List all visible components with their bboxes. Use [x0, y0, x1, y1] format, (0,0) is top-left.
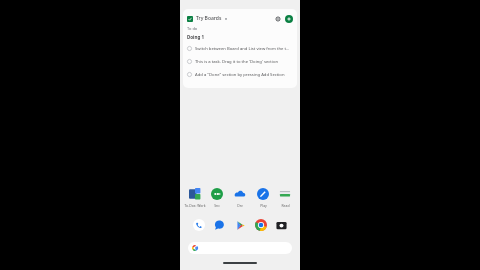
button[interactable]: Messages	[212, 218, 226, 232]
staticText: To do	[187, 26, 198, 31]
button[interactable]: Chrome	[254, 218, 268, 232]
button[interactable]: Snc	[206, 187, 228, 208]
button[interactable]: To-Dos: Work	[184, 187, 206, 208]
staticText: Read	[281, 203, 290, 208]
staticText: Snc	[214, 203, 220, 208]
button[interactable]: Play	[252, 187, 274, 208]
staticText: Add a "Done" section by pressing Add Sec…	[195, 72, 285, 78]
button[interactable]: Drv	[229, 187, 251, 208]
button[interactable]: Add a "Done" section by pressing Add Sec…	[187, 68, 293, 81]
button[interactable]: This is a task. Drag it to the 'Doing' s…	[187, 55, 293, 68]
staticText: Play	[260, 203, 267, 208]
staticText: Doing 1	[187, 34, 204, 40]
staticText: This is a task. Drag it to the 'Doing' s…	[195, 59, 278, 65]
staticText: To-Dos: Work	[184, 203, 206, 208]
button[interactable]: Play Store	[233, 218, 247, 232]
button[interactable]: Settings	[273, 14, 282, 23]
button[interactable]: Add task	[284, 14, 293, 23]
staticText: Try Boards	[196, 15, 222, 22]
button[interactable]: Switch between Board and List view from …	[187, 42, 293, 55]
button[interactable]: Read	[274, 187, 296, 208]
button[interactable]: Camera	[274, 218, 288, 232]
button[interactable]: Try Boards	[183, 9, 297, 88]
button[interactable]: Phone	[192, 218, 206, 232]
button[interactable]: Google Search	[188, 242, 292, 254]
staticText: Switch between Board and List view from …	[195, 46, 290, 52]
staticText: Drv	[237, 203, 243, 208]
